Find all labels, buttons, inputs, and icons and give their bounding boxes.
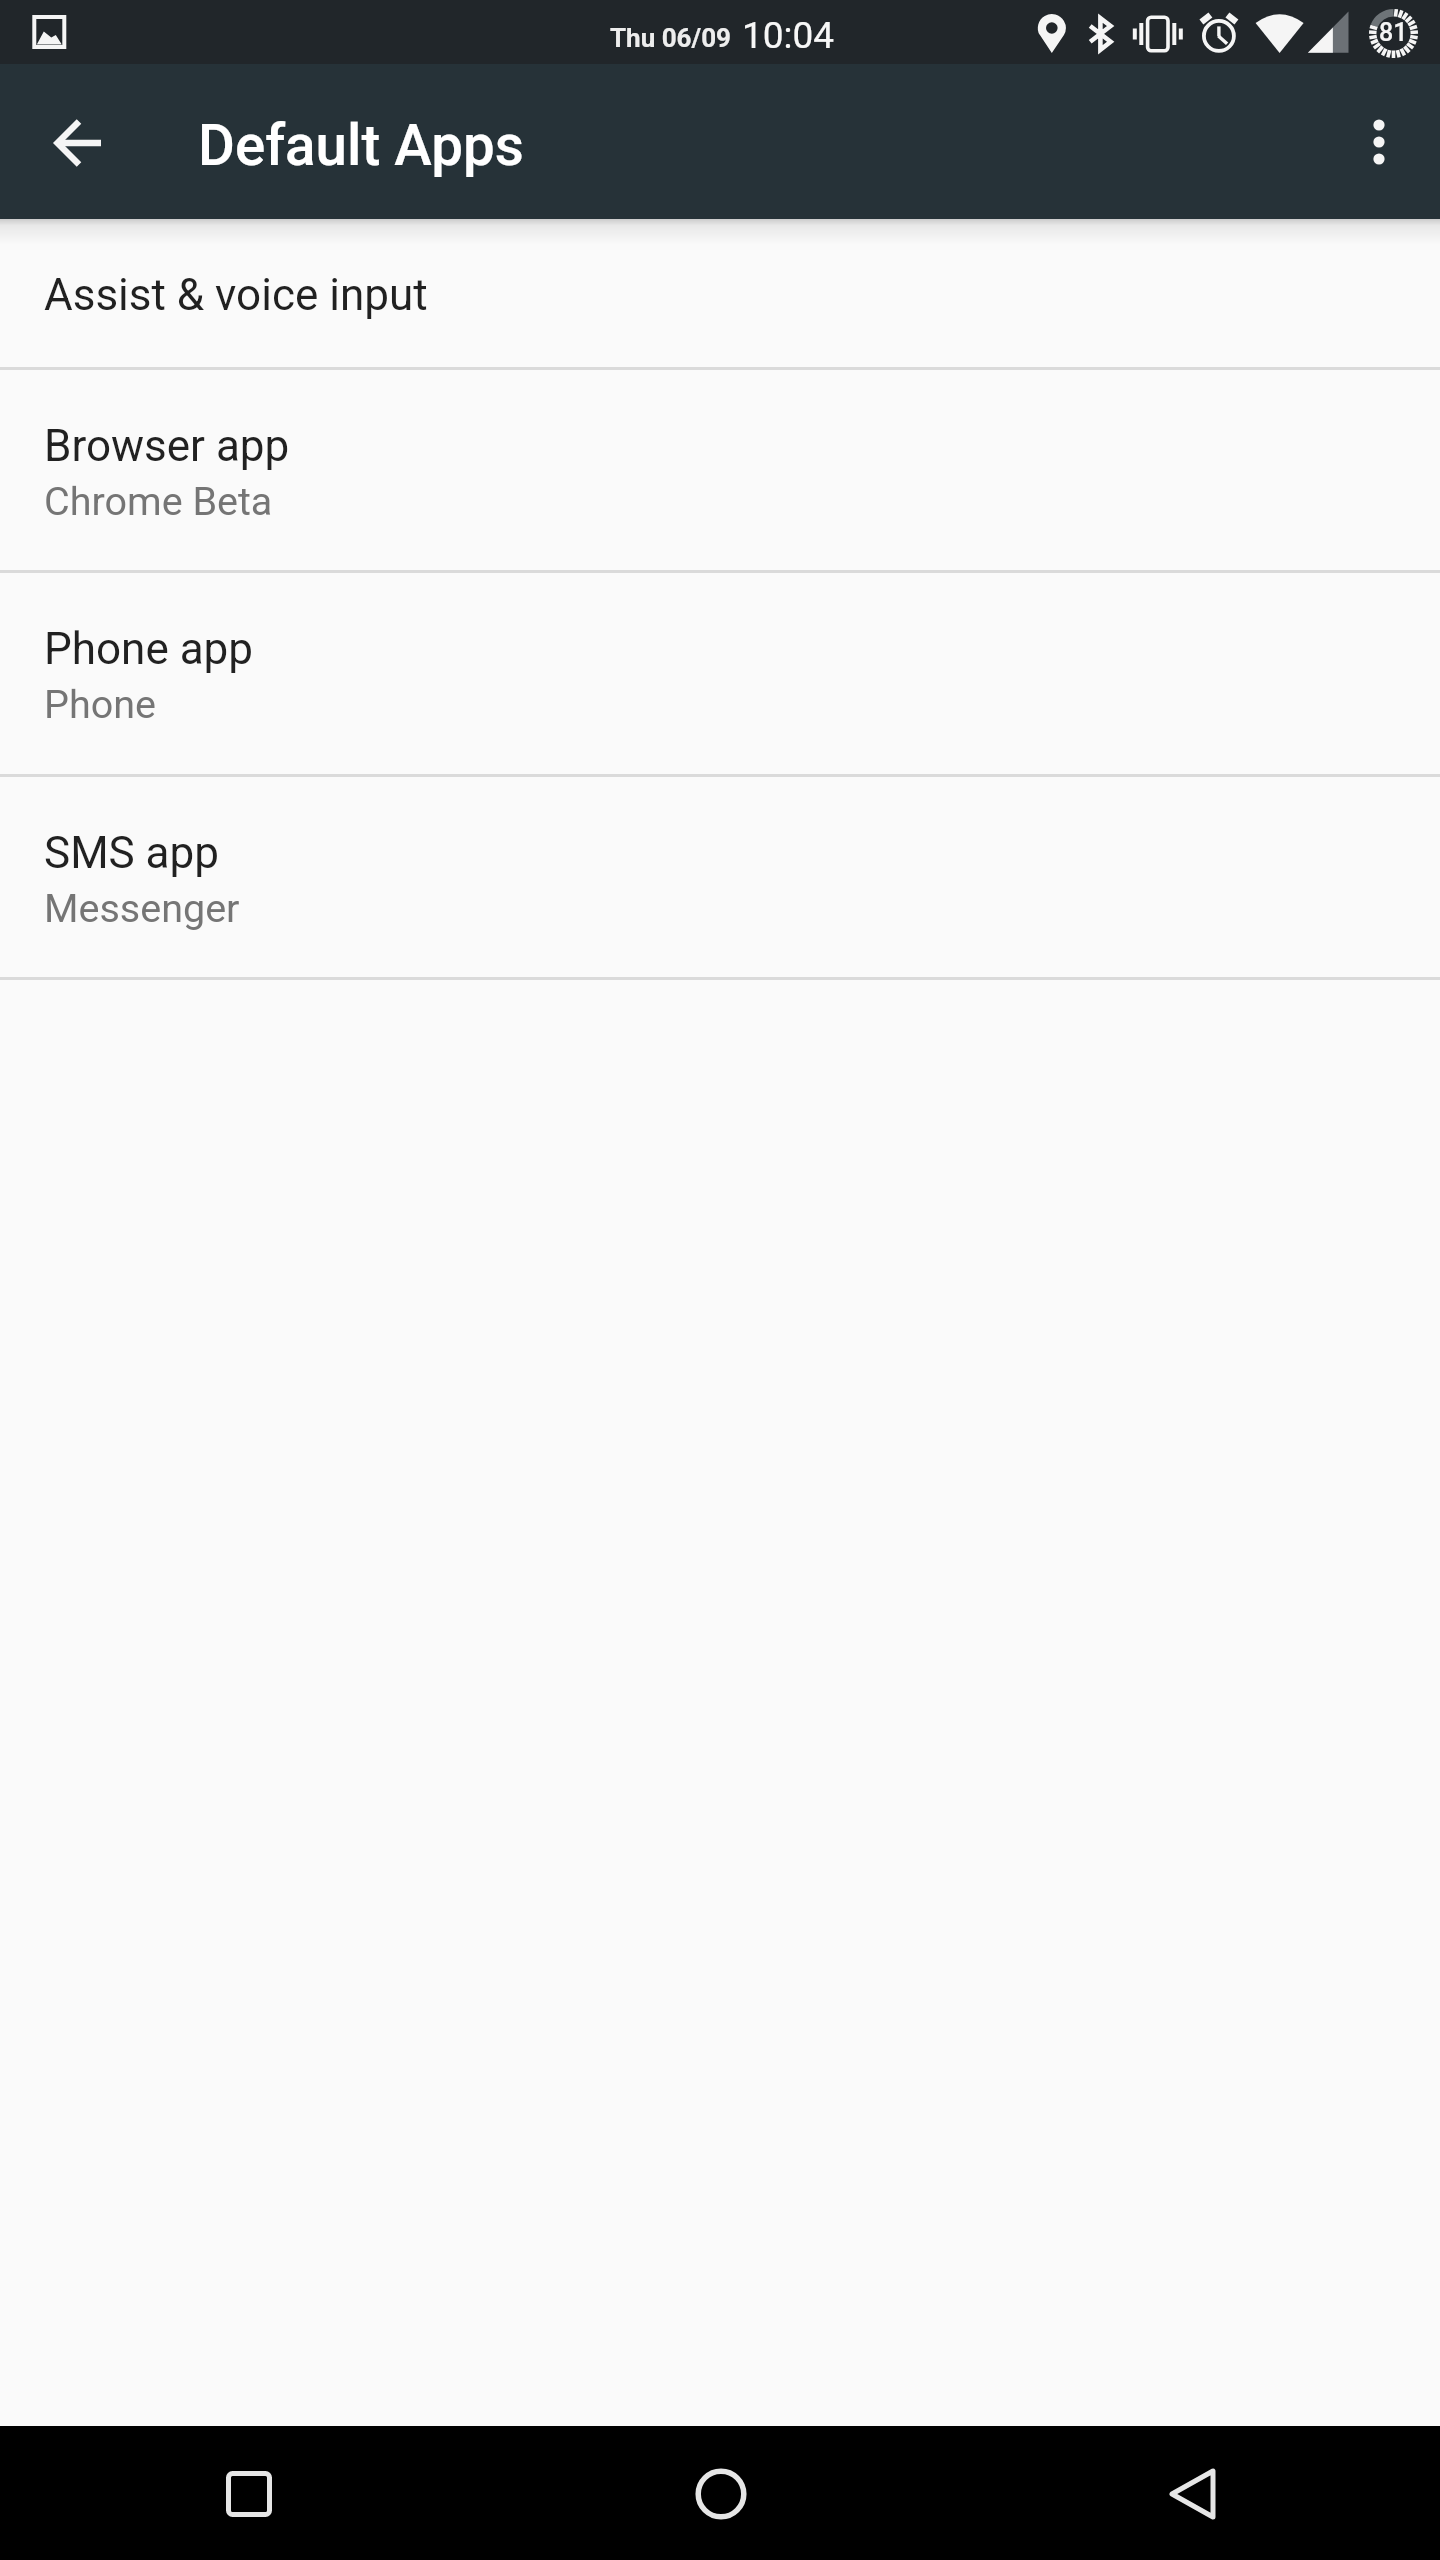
staticText: Phone app [44,623,253,675]
button[interactable]: Navigate up [33,99,121,187]
button[interactable]: Assist & voice input [0,219,1440,368]
staticText: 10:04 [742,14,835,57]
button[interactable]: SMS app [0,778,1440,978]
button[interactable]: Browser app [0,371,1440,571]
staticText: 81 [1379,18,1408,47]
button[interactable]: Back [1147,2448,1238,2539]
staticText: Browser app [44,420,290,472]
button[interactable]: Phone app [0,574,1440,775]
staticText: Assist & voice input [44,269,428,321]
staticText: Chrome Beta [44,478,273,524]
staticText: Default Apps [198,113,524,179]
button[interactable]: Recent apps [203,2448,294,2539]
staticText: SMS app [44,827,219,879]
button[interactable]: More options [1335,98,1423,186]
staticText: Phone [44,681,156,727]
button[interactable]: Home [676,2448,767,2539]
staticText: Thu 06/09 [610,23,732,53]
staticText: Messenger [44,885,240,931]
